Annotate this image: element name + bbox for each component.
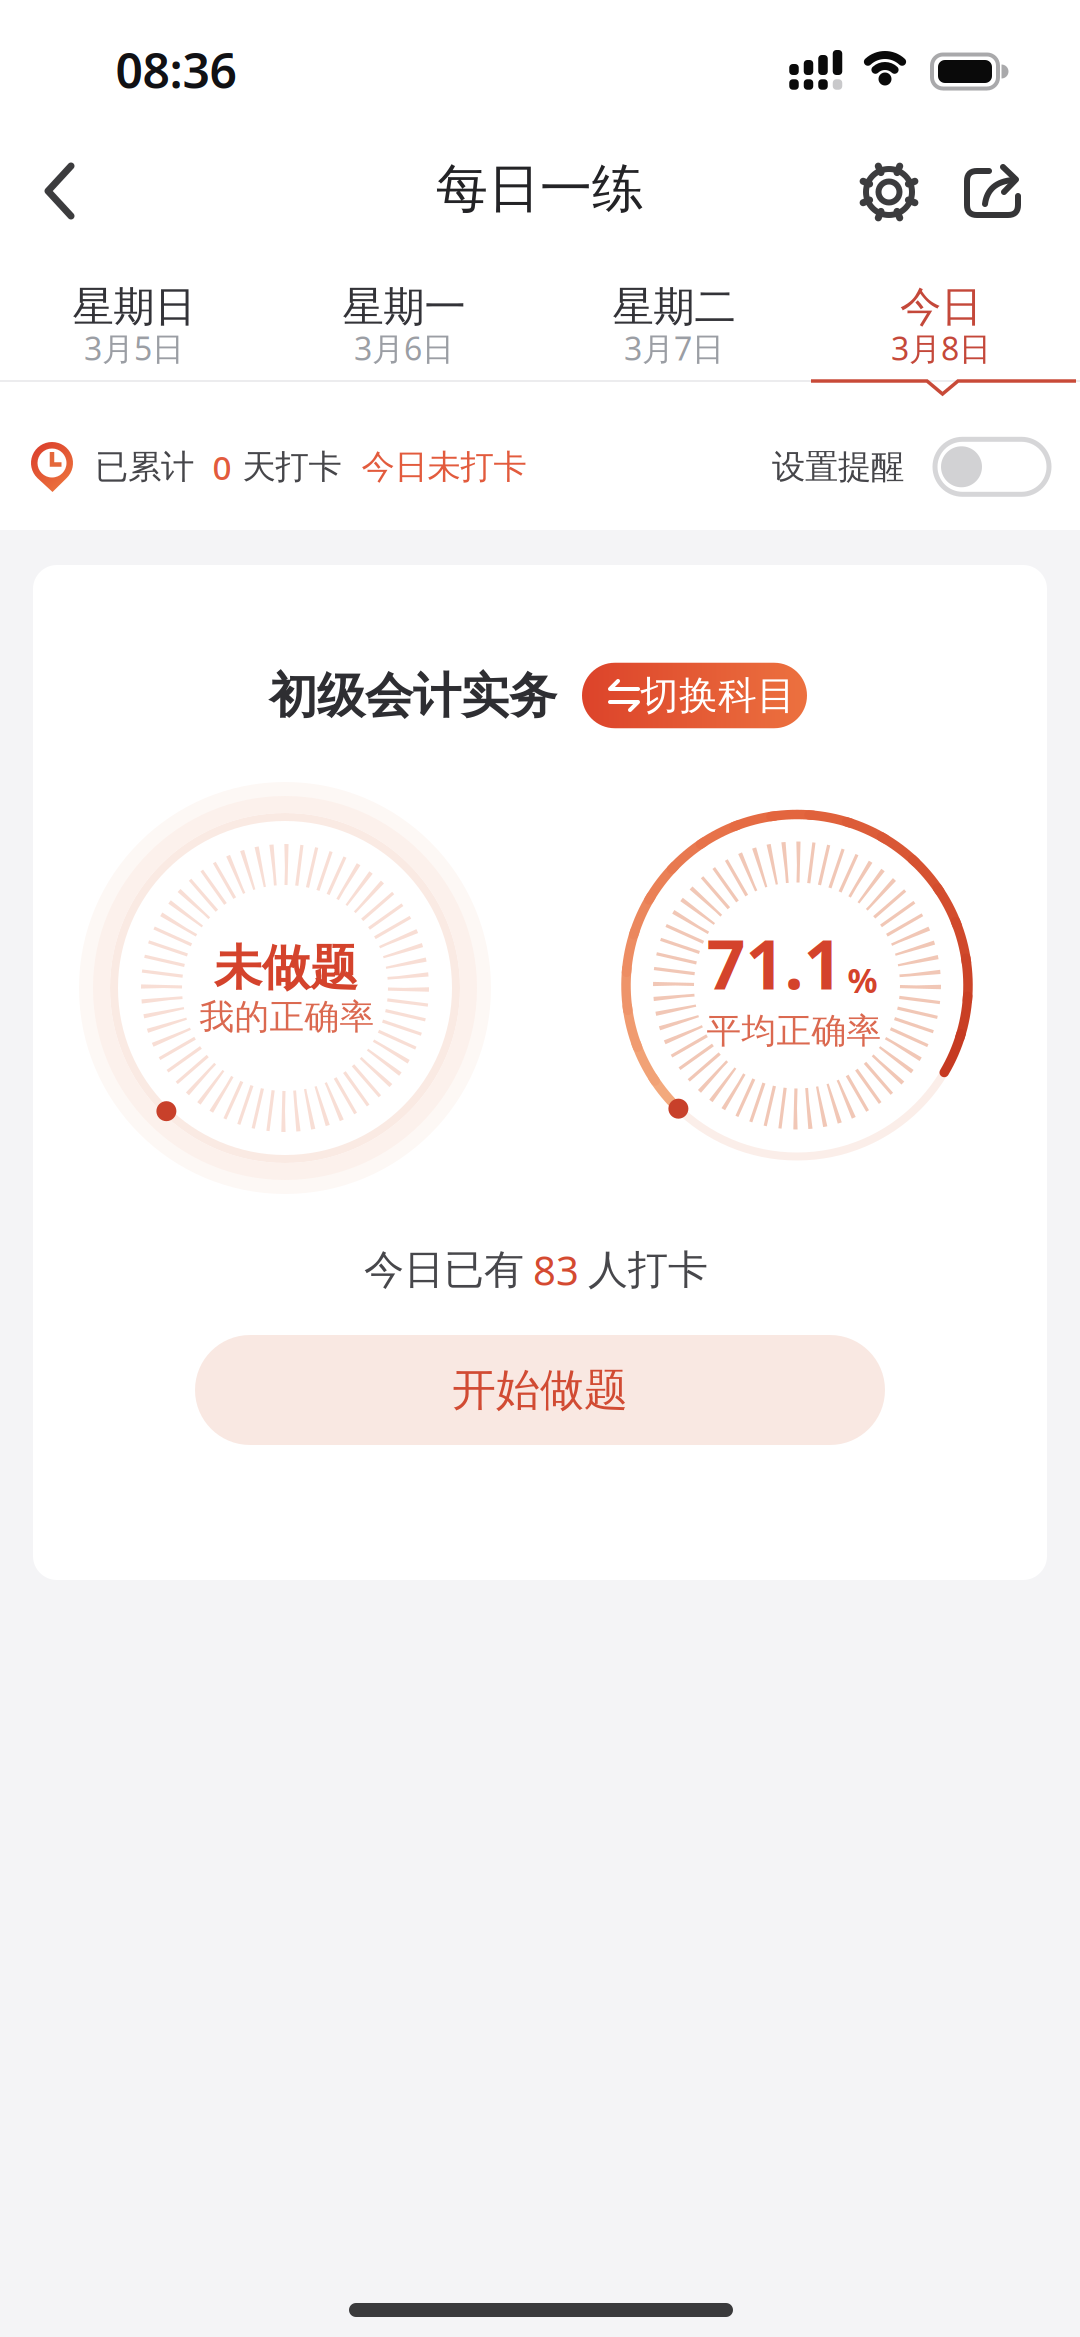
button[interactable]: Back [26, 158, 92, 224]
staticText: 切换科目 [640, 672, 796, 719]
staticText: 每日一练 [436, 157, 644, 221]
staticText: 平均正确率 [706, 1010, 881, 1052]
staticText: 3月6日 [354, 327, 454, 369]
button[interactable]: 设置提醒 [935, 439, 1049, 494]
staticText: 设置提醒 [772, 446, 904, 487]
staticText: 83 [533, 1243, 579, 1296]
button[interactable]: Settings [854, 157, 924, 227]
staticText: 人打卡 [588, 1245, 708, 1294]
staticText: 未做题 [214, 938, 358, 997]
staticText: 今日未打卡 [361, 446, 526, 487]
staticText: 今日 [900, 282, 982, 332]
staticText: 我的正确率 [199, 996, 374, 1038]
staticText: 初级会计实务 [269, 666, 557, 725]
staticText: 今日已有 [364, 1245, 524, 1294]
button[interactable]: 今日 [806, 265, 1076, 390]
button[interactable]: Share [958, 156, 1028, 226]
button[interactable]: 星期日 [0, 265, 269, 390]
staticText: 0 [212, 445, 231, 489]
staticText: 开始做题 [452, 1363, 628, 1417]
staticText: 星期二 [612, 282, 735, 332]
button[interactable]: 开始做题 [195, 1335, 885, 1445]
staticText: 3月7日 [624, 327, 724, 369]
staticText: 3月8日 [891, 327, 991, 369]
staticText: 已累计 [95, 446, 194, 487]
staticText: 08:36 [115, 38, 236, 102]
button[interactable]: 切换科目 [582, 663, 807, 728]
staticText: 星期一 [342, 282, 465, 332]
staticText: % [847, 958, 877, 1002]
staticText: 3月5日 [84, 327, 184, 369]
button[interactable]: 星期二 [539, 265, 809, 390]
staticText: 星期日 [72, 282, 195, 332]
button[interactable]: 星期一 [269, 265, 539, 390]
staticText: 天打卡 [242, 446, 341, 487]
staticText: 71.1 [706, 918, 842, 1008]
